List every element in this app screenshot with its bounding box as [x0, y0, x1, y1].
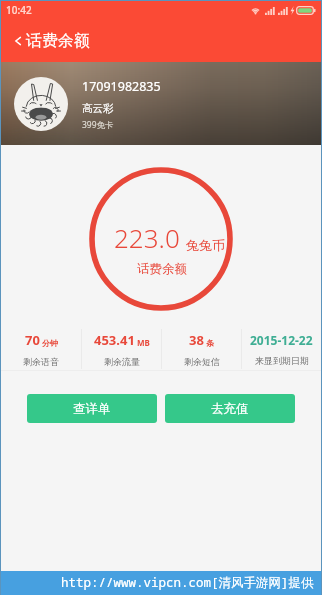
- button[interactable]: Back: [1, 31, 102, 51]
- staticText: 去充值: [211, 401, 249, 417]
- staticText: http://www.vipcn.com[清风手游网]提供: [61, 574, 314, 591]
- staticText: 17091982835: [82, 78, 161, 95]
- staticText: 剩余语音: [23, 356, 59, 367]
- staticText: 高云彩: [82, 102, 114, 115]
- staticText: 兔兔币: [186, 237, 225, 253]
- staticText: 10:42: [6, 3, 32, 17]
- staticText: 条: [206, 338, 214, 348]
- staticText: 70: [25, 331, 40, 349]
- staticText: 来显到期日期: [255, 355, 309, 366]
- button[interactable]: 去充值: [165, 394, 295, 423]
- staticText: 剩余短信: [184, 356, 220, 367]
- other: Back: [15, 35, 21, 47]
- staticText: 223.0: [114, 220, 180, 255]
- staticText: MB: [137, 337, 150, 348]
- staticText: 453.41: [94, 331, 135, 349]
- staticText: 话费余额: [26, 31, 90, 51]
- staticText: 399免卡: [82, 119, 114, 131]
- staticText: 剩余流量: [104, 356, 140, 367]
- staticText: 分钟: [42, 338, 58, 348]
- staticText: 查详单: [73, 401, 111, 417]
- button[interactable]: 查详单: [27, 394, 157, 423]
- staticText: 话费余额: [137, 261, 187, 277]
- staticText: 2015-12-22: [250, 332, 313, 348]
- staticText: 38: [189, 331, 204, 349]
